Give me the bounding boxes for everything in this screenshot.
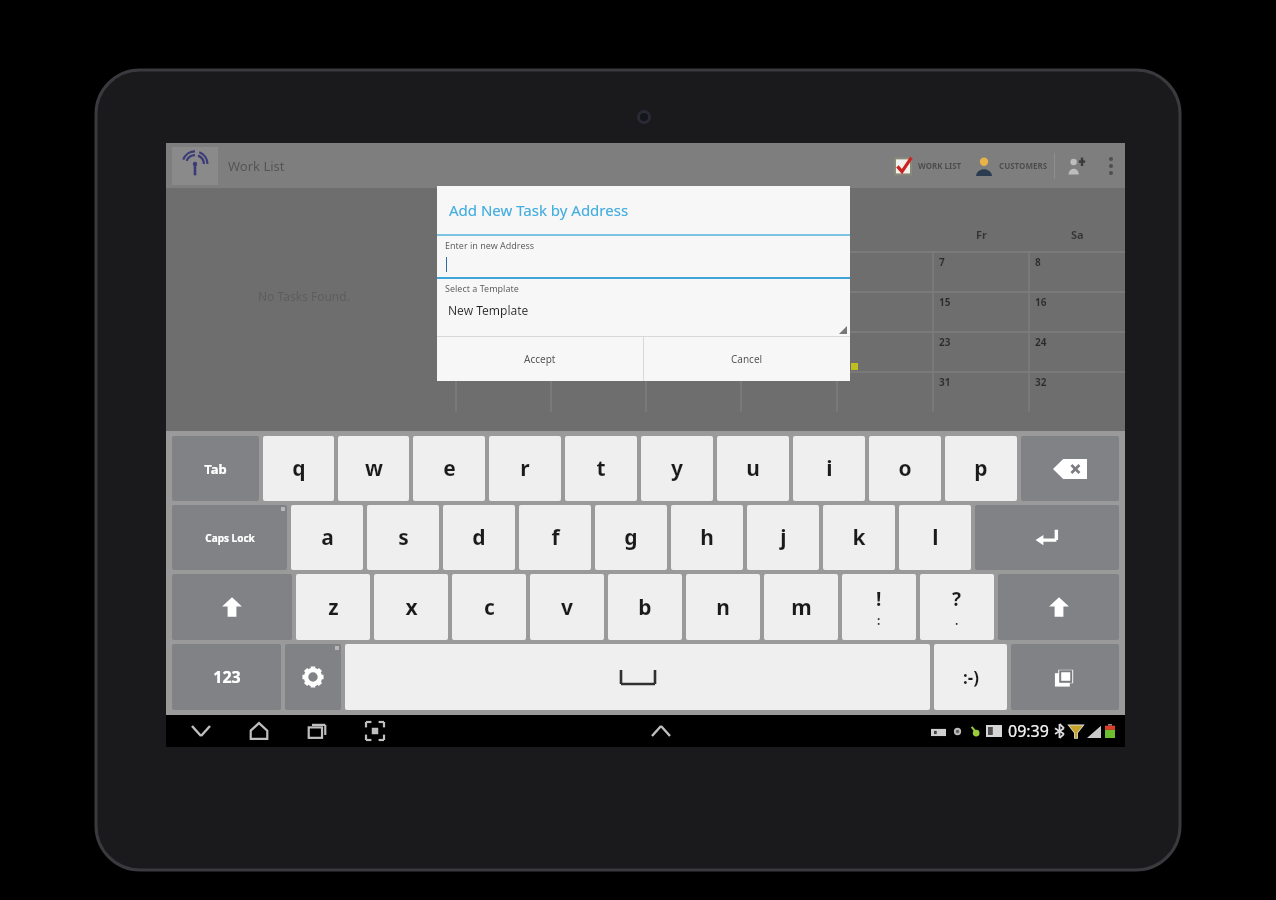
button[interactable]: y bbox=[641, 436, 713, 501]
button[interactable]: Keyboard settings bbox=[285, 644, 341, 710]
staticText: Enter in new Address bbox=[445, 239, 535, 251]
button[interactable]: j bbox=[747, 505, 819, 570]
button[interactable]: z bbox=[296, 574, 370, 640]
button[interactable] bbox=[551, 252, 646, 292]
button[interactable]: ! bbox=[842, 574, 916, 640]
button[interactable]: o bbox=[869, 436, 941, 501]
button[interactable]: a bbox=[291, 505, 363, 570]
button[interactable]: Accept bbox=[437, 337, 643, 381]
button[interactable]: m bbox=[764, 574, 838, 640]
button[interactable] bbox=[741, 252, 837, 292]
button[interactable]: 16 bbox=[1029, 292, 1125, 332]
staticText: c bbox=[484, 593, 495, 622]
button[interactable]: :-) bbox=[934, 644, 1007, 710]
staticText: CUSTOMERS bbox=[999, 160, 1048, 171]
button[interactable]: Shift bbox=[172, 574, 292, 640]
button[interactable]: Home bbox=[242, 715, 276, 747]
staticText: b bbox=[638, 593, 652, 622]
button[interactable]: k bbox=[823, 505, 895, 570]
button[interactable]: p bbox=[945, 436, 1017, 501]
button[interactable]: Add task bbox=[1055, 143, 1097, 188]
button[interactable]: d bbox=[443, 505, 515, 570]
button[interactable]: Shift bbox=[998, 574, 1119, 640]
staticText: Select a Template bbox=[445, 282, 519, 294]
button[interactable]: 8 bbox=[1029, 252, 1125, 292]
button[interactable]: Clipboard bbox=[1011, 644, 1119, 710]
button[interactable]: App logo bbox=[172, 147, 218, 185]
button[interactable]: CUSTOMERS bbox=[968, 143, 1054, 188]
button[interactable]: l bbox=[899, 505, 971, 570]
staticText: u bbox=[746, 454, 760, 483]
button[interactable]: e bbox=[413, 436, 485, 501]
staticText: q bbox=[292, 454, 306, 483]
button[interactable] bbox=[646, 252, 741, 292]
button[interactable] bbox=[456, 372, 551, 412]
button[interactable]: 123 bbox=[172, 644, 281, 710]
button[interactable] bbox=[456, 332, 551, 372]
button[interactable]: s bbox=[367, 505, 439, 570]
button[interactable] bbox=[837, 372, 933, 412]
staticText: Tab bbox=[204, 460, 227, 478]
staticText: z bbox=[328, 593, 339, 622]
staticText: 15 bbox=[939, 295, 951, 309]
button[interactable]: Enter bbox=[975, 505, 1119, 570]
button[interactable]: c bbox=[452, 574, 526, 640]
button[interactable]: Cancel bbox=[644, 337, 850, 381]
staticText: w bbox=[365, 454, 383, 483]
button[interactable]: More options bbox=[1097, 143, 1125, 188]
button[interactable]: Recents bbox=[300, 715, 334, 747]
staticText: . bbox=[955, 612, 959, 628]
button[interactable]: 32 bbox=[1029, 372, 1125, 412]
button[interactable]: 31 bbox=[933, 372, 1029, 412]
button[interactable]: WORK LIST bbox=[887, 143, 968, 188]
staticText: 32 bbox=[1035, 375, 1047, 389]
staticText: o bbox=[898, 454, 912, 483]
button[interactable] bbox=[741, 372, 837, 412]
button[interactable]: Screenshot bbox=[358, 715, 392, 747]
button[interactable] bbox=[646, 372, 741, 412]
button[interactable]: b bbox=[608, 574, 682, 640]
button[interactable] bbox=[456, 292, 551, 332]
button[interactable]: Tab bbox=[172, 436, 259, 501]
button[interactable]: New Template bbox=[437, 294, 850, 336]
button[interactable]: g bbox=[595, 505, 667, 570]
button[interactable] bbox=[456, 252, 551, 292]
button[interactable]: q bbox=[263, 436, 334, 501]
button[interactable] bbox=[837, 252, 933, 292]
button[interactable]: Back bbox=[184, 715, 218, 747]
button[interactable] bbox=[741, 332, 837, 372]
button[interactable] bbox=[551, 372, 646, 412]
button[interactable]: i bbox=[793, 436, 865, 501]
staticText: s bbox=[398, 523, 409, 552]
staticText: 31 bbox=[939, 375, 951, 389]
button[interactable]: h bbox=[671, 505, 743, 570]
button[interactable]: 23 bbox=[933, 332, 1029, 372]
button[interactable]: 24 bbox=[1029, 332, 1125, 372]
button[interactable] bbox=[551, 332, 646, 372]
staticText: No Tasks Found. bbox=[258, 288, 350, 304]
button[interactable]: f bbox=[519, 505, 591, 570]
button[interactable]: Space bbox=[345, 644, 930, 710]
button[interactable] bbox=[646, 332, 741, 372]
button[interactable] bbox=[437, 251, 850, 277]
button[interactable]: 7 bbox=[933, 252, 1029, 292]
staticText: x bbox=[405, 593, 418, 622]
staticText: f bbox=[551, 523, 560, 552]
button[interactable]: ? bbox=[920, 574, 994, 640]
button[interactable]: n bbox=[686, 574, 760, 640]
button[interactable]: u bbox=[717, 436, 789, 501]
button[interactable]: 15 bbox=[933, 292, 1029, 332]
button[interactable]: x bbox=[374, 574, 448, 640]
button[interactable]: Delete bbox=[1021, 436, 1119, 501]
button[interactable]: Caps Lock bbox=[172, 505, 287, 570]
button[interactable]: r bbox=[489, 436, 561, 501]
button[interactable] bbox=[837, 292, 933, 332]
button[interactable]: w bbox=[338, 436, 409, 501]
button[interactable]: Expand bbox=[644, 715, 678, 747]
button[interactable]: v bbox=[530, 574, 604, 640]
button[interactable]: t bbox=[565, 436, 637, 501]
button[interactable] bbox=[837, 332, 933, 372]
